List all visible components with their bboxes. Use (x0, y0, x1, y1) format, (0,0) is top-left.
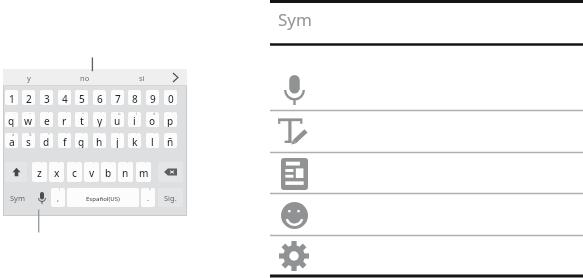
button[interactable]: 9 (146, 90, 159, 105)
staticText: ` (48, 112, 50, 116)
staticText: si (139, 73, 145, 83)
staticText: , (57, 194, 59, 204)
button[interactable]: 5 (75, 90, 88, 105)
button[interactable]: 3 (40, 90, 53, 105)
staticText: 4 (62, 92, 68, 105)
button[interactable]: ' (58, 133, 71, 148)
staticText: ~ (29, 112, 32, 116)
button[interactable]: ' (67, 162, 82, 182)
staticText: 9 (150, 92, 156, 105)
button[interactable]: 7 (111, 90, 124, 105)
button[interactable]: Backspace (158, 162, 183, 182)
staticText: r (62, 114, 67, 127)
staticText: ' (76, 162, 77, 166)
staticText: p (167, 114, 174, 127)
staticText: . (147, 194, 149, 204)
button[interactable]: Sig. (158, 188, 183, 207)
staticText: ? (149, 188, 151, 192)
button[interactable]: Español(US) (67, 188, 139, 207)
button[interactable]: í (128, 112, 141, 127)
staticText: d (43, 135, 50, 148)
staticText: ' (119, 133, 120, 137)
staticText: ' (101, 133, 102, 137)
button[interactable]: ! (51, 188, 65, 207)
button[interactable]: ß (22, 133, 35, 148)
staticText: b (105, 166, 112, 180)
staticText: ' (41, 162, 42, 166)
button[interactable]: ó (146, 112, 159, 127)
staticText: i (133, 114, 136, 127)
staticText: x (54, 166, 60, 180)
button[interactable]: ^ (75, 112, 88, 127)
button[interactable]: ' (164, 112, 177, 127)
button[interactable]: 2 (22, 90, 35, 105)
staticText: ß (29, 133, 32, 137)
staticText: n (122, 166, 129, 180)
button[interactable]: ' (49, 162, 64, 182)
button[interactable]: 1 (5, 90, 18, 105)
staticText: g (78, 135, 85, 148)
button[interactable]: si (115, 69, 168, 86)
button[interactable]: ' (111, 133, 124, 148)
staticText: ° (48, 133, 50, 137)
button[interactable]: Emoji (272, 195, 583, 236)
button[interactable]: ~ (22, 112, 35, 127)
staticText: f (63, 135, 67, 148)
button[interactable]: ¨ (93, 112, 106, 127)
staticText: 1 (9, 92, 15, 105)
staticText: o (149, 114, 156, 127)
staticText: ' (145, 162, 146, 166)
button[interactable]: ` (40, 112, 53, 127)
button[interactable]: ´ (58, 112, 71, 127)
staticText: ' (58, 162, 59, 166)
staticText: ' (172, 112, 173, 116)
button[interactable]: More suggestions (164, 69, 186, 86)
button[interactable]: Clipboard (272, 152, 583, 196)
staticText: ¨ (100, 112, 103, 116)
staticText: ' (83, 133, 84, 137)
button[interactable]: Voice input (275, 69, 583, 111)
button[interactable]: ü (111, 112, 124, 127)
button[interactable]: á (5, 133, 18, 148)
staticText: 6 (97, 92, 103, 105)
button[interactable]: Sym (5, 188, 30, 207)
button[interactable]: ñ (164, 133, 177, 148)
button[interactable]: no (56, 69, 113, 86)
button[interactable]: ' (118, 162, 133, 182)
staticText: w (24, 114, 33, 127)
staticText: 3 (44, 92, 50, 105)
staticText: z (37, 166, 42, 180)
button[interactable]: 6 (93, 90, 106, 105)
button[interactable]: ' (101, 162, 116, 182)
staticText: 0 (168, 92, 174, 105)
staticText: v (89, 166, 95, 180)
button[interactable]: 8 (128, 90, 141, 105)
button[interactable]: ' (75, 133, 88, 148)
button[interactable]: ' (84, 162, 99, 182)
staticText: a (9, 135, 15, 148)
button[interactable]: Handwriting (269, 112, 583, 152)
staticText: 8 (132, 92, 138, 105)
button[interactable]: · (5, 112, 18, 127)
staticText: ´ (66, 112, 68, 116)
staticText: Español(US) (86, 195, 120, 203)
button[interactable]: ' (128, 133, 141, 148)
button[interactable]: Shift (5, 162, 27, 182)
button[interactable]: 4 (58, 90, 71, 105)
button[interactable]: ° (40, 133, 53, 148)
button[interactable]: Sym (270, 3, 583, 44)
button[interactable]: ' (136, 162, 151, 182)
button[interactable]: ' (146, 133, 159, 148)
staticText: á (12, 133, 15, 137)
button[interactable]: Settings (270, 235, 583, 277)
button[interactable]: ? (141, 188, 155, 207)
staticText: ' (66, 133, 67, 137)
staticText: m (139, 166, 149, 180)
staticText: k (132, 135, 138, 148)
staticText: Sym (10, 193, 25, 203)
button[interactable]: Voice input (31, 188, 52, 207)
button[interactable]: y (3, 69, 55, 86)
button[interactable]: 0 (164, 90, 177, 105)
button[interactable]: ' (32, 162, 47, 182)
button[interactable]: ' (93, 133, 106, 148)
